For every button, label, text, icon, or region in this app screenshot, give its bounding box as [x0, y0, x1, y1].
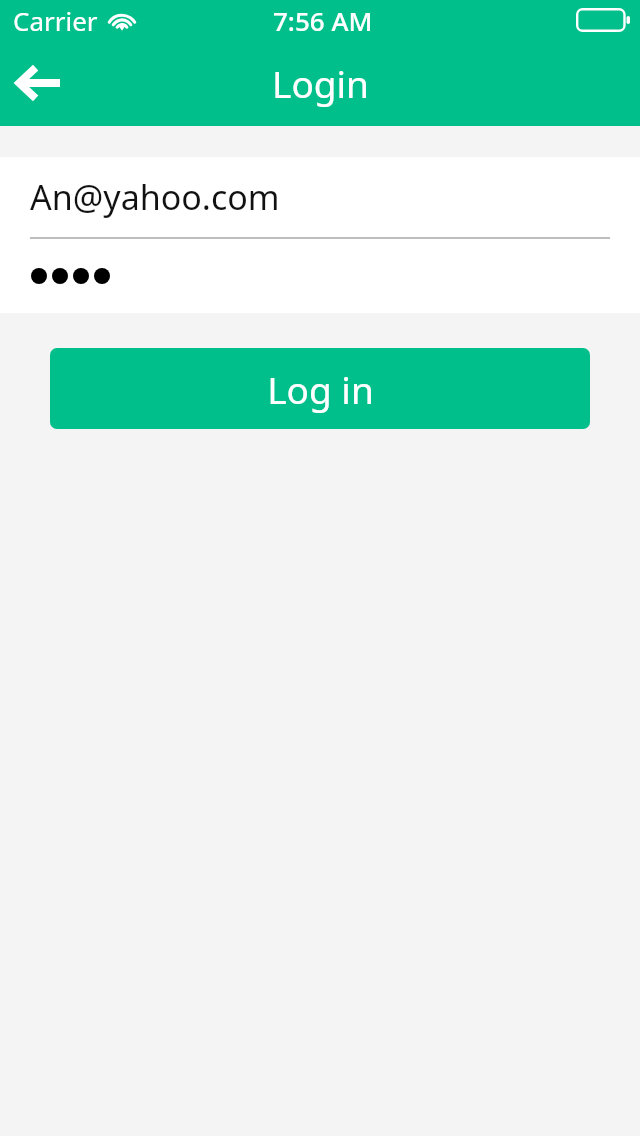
staticText: Carrier [13, 3, 98, 38]
staticText: Login [272, 58, 369, 108]
staticText: An@yahoo.com [30, 174, 280, 220]
button[interactable]: Back [0, 44, 78, 122]
button[interactable] [0, 239, 640, 313]
staticText: 7:56 AM [273, 3, 373, 38]
button[interactable]: An@yahoo.com [0, 157, 640, 237]
button[interactable]: Log in [50, 348, 590, 429]
staticText: Log in [267, 364, 374, 414]
